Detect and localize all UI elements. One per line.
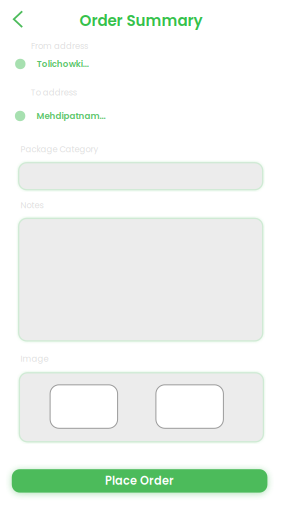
staticText: Mehdipatnam... [37,110,106,122]
staticText: To address [31,87,77,98]
staticText: Notes [20,199,43,211]
staticText: Image [20,353,48,365]
staticText: From address [31,40,88,52]
staticText: Package Category [20,143,98,155]
staticText: Place Order [105,473,174,489]
button[interactable]: Place Order [12,469,267,493]
staticText: Tolichowki... [37,58,89,70]
button[interactable]: Add first image [50,385,118,428]
button[interactable]: Back [0,5,34,33]
button[interactable]: Add second image [156,385,223,428]
staticText: Order Summary [79,10,202,31]
